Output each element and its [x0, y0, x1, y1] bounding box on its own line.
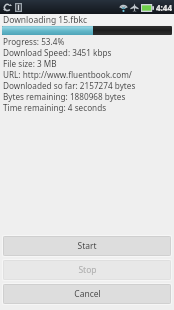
staticText: Downloading 15.fbkc [3, 14, 88, 25]
staticText: Start [77, 240, 97, 252]
button[interactable]: Cancel [3, 284, 171, 304]
staticText: 4:44 [156, 2, 172, 13]
staticText: URL: http://www.fluentbook.com/ [3, 69, 132, 80]
staticText: Stop [78, 264, 97, 276]
staticText: Time remaining: 4 seconds [3, 102, 107, 113]
staticText: Progress: 53.4% [3, 36, 65, 47]
staticText: Cancel [74, 288, 101, 300]
staticText: File size: 3 MB [3, 58, 57, 69]
staticText: Download Speed: 3451 kbps [3, 47, 112, 58]
button[interactable]: Stop [3, 260, 171, 280]
staticText: Bytes remaining: 1880968 bytes [3, 91, 126, 102]
button[interactable]: Start [3, 236, 171, 256]
staticText: Downloaded so far: 2157274 bytes [3, 80, 136, 91]
